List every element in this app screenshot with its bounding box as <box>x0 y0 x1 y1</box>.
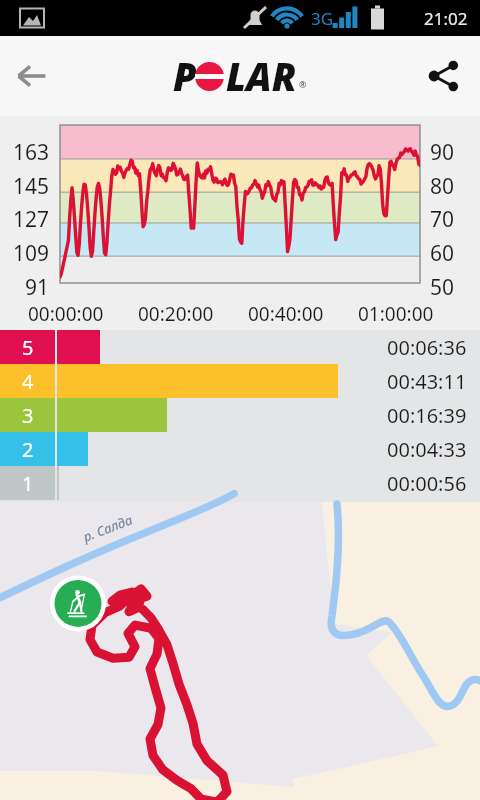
staticText: 00:16:39 <box>387 402 467 429</box>
staticText: 3G <box>311 7 334 30</box>
button[interactable]: 1 <box>0 466 480 500</box>
staticText: 00:00:00 <box>28 301 104 327</box>
staticText: 2 <box>22 436 34 463</box>
staticText: 50 <box>430 273 455 302</box>
button[interactable]: P <box>173 50 307 102</box>
button[interactable]: 5 <box>0 330 480 364</box>
staticText: 1 <box>22 470 34 497</box>
staticText: 60 <box>430 239 455 268</box>
button[interactable]: Back <box>0 44 64 108</box>
staticText: 109 <box>13 239 50 268</box>
staticText: 4 <box>22 368 34 395</box>
staticText: 3 <box>22 402 34 429</box>
staticText: 00:20:00 <box>138 301 214 327</box>
staticText: 00:00:56 <box>387 470 467 497</box>
button[interactable]: 2 <box>0 432 480 466</box>
staticText: 00:40:00 <box>248 301 324 327</box>
staticText: 01:00:00 <box>358 301 434 327</box>
staticText: P <box>173 50 197 102</box>
staticText: 163 <box>13 138 50 167</box>
staticText: р. Салда <box>80 510 135 546</box>
staticText: ® <box>299 78 307 90</box>
staticText: 91 <box>25 273 50 302</box>
staticText: 90 <box>430 138 455 167</box>
staticText: 00:43:11 <box>387 368 467 395</box>
button[interactable]: 3 <box>0 398 480 432</box>
button[interactable]: р. Салда <box>0 502 480 800</box>
button[interactable]: 4 <box>0 364 480 398</box>
staticText: 80 <box>430 172 455 201</box>
staticText: 70 <box>430 205 455 234</box>
staticText: 00:06:36 <box>387 334 467 361</box>
button[interactable]: Share <box>408 40 480 112</box>
staticText: 00:04:33 <box>387 436 467 463</box>
staticText: 21:02 <box>424 7 468 30</box>
staticText: LAR <box>226 50 297 102</box>
staticText: 5 <box>22 334 34 361</box>
staticText: 145 <box>13 172 50 201</box>
staticText: 127 <box>13 205 50 234</box>
